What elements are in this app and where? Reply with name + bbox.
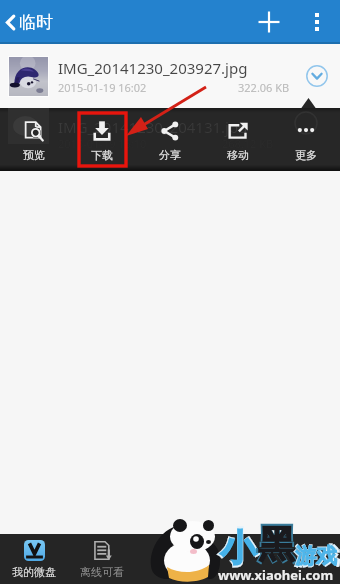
button[interactable]: 临时 (0, 0, 61, 44)
staticText: 游戏 (295, 543, 337, 569)
staticText: 更多 (295, 148, 317, 162)
staticText: 黑 (258, 521, 295, 568)
button[interactable]: 分享 (136, 108, 204, 171)
staticText: 游戏 (294, 542, 340, 571)
button[interactable]: New (245, 0, 293, 44)
staticText: 下载 (91, 148, 113, 162)
button[interactable] (136, 534, 204, 584)
staticText: 离线可看 (80, 565, 124, 579)
button[interactable]: 移动 (204, 108, 272, 171)
staticText: 268.12 KB (222, 136, 274, 151)
staticText: 移动 (227, 148, 249, 162)
staticText: IMG_20141230_204131.jpg (58, 117, 248, 137)
staticText: 2015-01-19 16:02 (58, 80, 147, 95)
staticText: 小 (218, 523, 258, 573)
button[interactable]: 预览 (0, 108, 68, 171)
staticText: 黑 (256, 519, 297, 571)
button[interactable]: Expand actions (302, 61, 332, 91)
button[interactable]: 离线可看 (68, 534, 136, 584)
button[interactable]: More options (293, 0, 340, 44)
button[interactable] (204, 534, 272, 584)
staticText: IMG_20141230_203927.jpg (58, 58, 248, 78)
button[interactable]: 下载 (68, 108, 136, 171)
staticText: 322.06 KB (238, 80, 290, 95)
button[interactable]: IMG_20141230_203927.jpg (0, 44, 340, 108)
staticText: 分享 (159, 148, 181, 162)
staticText: 我的微盘 (12, 565, 56, 579)
staticText: 2015-01-19 16:10 (58, 136, 147, 151)
staticText: www.xiaohei.com (218, 566, 334, 584)
staticText: 预览 (23, 148, 45, 162)
button[interactable]: 我的微盘 (0, 534, 68, 584)
staticText: 小 (220, 525, 256, 570)
button[interactable] (272, 534, 340, 584)
staticText: 临时 (19, 12, 53, 33)
button[interactable]: 更多 (272, 108, 340, 171)
